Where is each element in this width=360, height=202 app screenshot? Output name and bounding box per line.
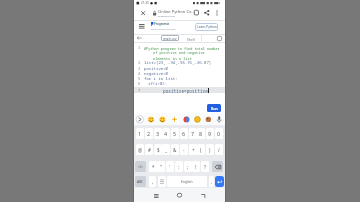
button[interactable]: _ — [162, 144, 170, 155]
staticText: 0 — [217, 130, 221, 137]
button[interactable]: ? — [201, 161, 209, 172]
staticText: elements in a list — [153, 56, 192, 61]
button[interactable]: / — [215, 144, 223, 155]
button[interactable]: 2 — [145, 128, 153, 139]
button[interactable]: 8 — [197, 128, 205, 139]
staticText: ABC — [137, 180, 144, 184]
button[interactable]: 9 — [206, 128, 214, 139]
button[interactable]: . — [209, 176, 214, 187]
staticText: 7 — [191, 130, 195, 137]
staticText: 4 — [138, 71, 141, 76]
button[interactable]: - — [180, 144, 188, 155]
button[interactable]: 1 — [136, 128, 144, 139]
button[interactable]: 4 — [162, 128, 170, 139]
staticText: Run — [211, 106, 218, 111]
button[interactable]: English — [167, 176, 207, 187]
staticText: =\< — [138, 165, 143, 169]
staticText: ! — [195, 164, 197, 170]
button[interactable]: 7 — [189, 128, 197, 139]
staticText: * — [152, 164, 155, 170]
button[interactable] — [152, 190, 162, 200]
staticText: list=[23, -94,-96.76,-36.87] — [144, 60, 212, 65]
button[interactable]: # — [145, 144, 153, 155]
staticText: ? — [204, 164, 206, 170]
staticText: 21:30 — [141, 1, 149, 5]
staticText: Learn Python — [197, 25, 217, 29]
button[interactable]: ! — [192, 161, 200, 172]
staticText: Online Python Co... — [158, 9, 195, 15]
staticText: if(i<0): — [148, 81, 168, 86]
button[interactable]: 0 — [215, 128, 223, 139]
staticText: 1 — [138, 45, 141, 50]
button[interactable]: Learn Python — [195, 23, 218, 31]
staticText: main.py — [163, 36, 177, 41]
staticText: 6 — [182, 130, 186, 137]
button[interactable]: @ — [136, 144, 144, 155]
staticText: $ — [157, 147, 160, 153]
staticText: 1 — [138, 130, 142, 137]
staticText: 3 — [138, 66, 141, 71]
staticText: / — [218, 147, 220, 153]
staticText: + — [192, 147, 195, 153]
staticText: English — [181, 179, 193, 184]
staticText: positive=positive — [163, 88, 208, 94]
staticText: #Python program to find total number — [144, 46, 220, 51]
button[interactable]: & — [171, 144, 179, 155]
button[interactable]: Run — [207, 104, 221, 112]
button[interactable]: ( — [197, 144, 205, 155]
button[interactable]: " — [157, 161, 165, 172]
staticText: " — [160, 164, 162, 170]
staticText: ; — [187, 164, 189, 170]
button[interactable] — [198, 190, 208, 200]
button[interactable] — [175, 190, 185, 200]
staticText: 7 — [138, 88, 141, 93]
button[interactable]: main.py — [161, 35, 179, 41]
button[interactable] — [215, 176, 224, 187]
staticText: Programiz — [154, 22, 169, 26]
staticText: 4 — [164, 130, 168, 137]
staticText: 5 — [173, 130, 177, 137]
staticText: Shell — [187, 37, 195, 42]
staticText: for i in list: — [144, 76, 178, 81]
button[interactable]: 5 — [171, 128, 179, 139]
button[interactable]: : — [175, 161, 183, 172]
staticText: - — [183, 147, 185, 153]
button[interactable]: ABC — [135, 176, 146, 187]
staticText: of positive and negative — [153, 50, 205, 55]
staticText: , — [152, 179, 154, 185]
button[interactable]: ' — [166, 161, 174, 172]
staticText: positive=0 — [144, 66, 168, 71]
button[interactable]: + — [189, 144, 197, 155]
staticText: 2 — [138, 60, 141, 65]
staticText: 3 — [156, 130, 160, 137]
button[interactable]: =\< — [135, 161, 146, 172]
staticText: Python Online Compiler — [151, 28, 176, 31]
button[interactable] — [158, 176, 166, 187]
staticText: . — [211, 179, 213, 185]
button[interactable]: 3 — [154, 128, 162, 139]
button[interactable]: Shell — [185, 36, 197, 42]
staticText: _ — [165, 147, 168, 153]
button[interactable]: ) — [206, 144, 214, 155]
staticText: & — [173, 147, 177, 153]
staticText: 8 — [199, 130, 203, 137]
staticText: ) — [209, 147, 211, 153]
staticText: 2 — [147, 130, 151, 137]
button[interactable]: , — [149, 176, 156, 187]
staticText: # — [148, 147, 151, 153]
button[interactable]: 6 — [180, 128, 188, 139]
button[interactable]: $ — [154, 144, 162, 155]
button[interactable]: * — [149, 161, 157, 172]
button[interactable] — [139, 9, 147, 17]
staticText: @ — [138, 147, 143, 153]
button[interactable] — [212, 161, 223, 172]
staticText: 9 — [208, 130, 212, 137]
button[interactable]: ; — [184, 161, 192, 172]
staticText: 5 — [138, 76, 141, 81]
staticText: ( — [200, 147, 202, 153]
staticText: 6 — [138, 81, 141, 86]
staticText: programiz.com — [158, 14, 176, 17]
staticText: negative=0 — [144, 71, 168, 76]
staticText: : — [178, 164, 180, 170]
staticText: ' — [169, 164, 171, 170]
